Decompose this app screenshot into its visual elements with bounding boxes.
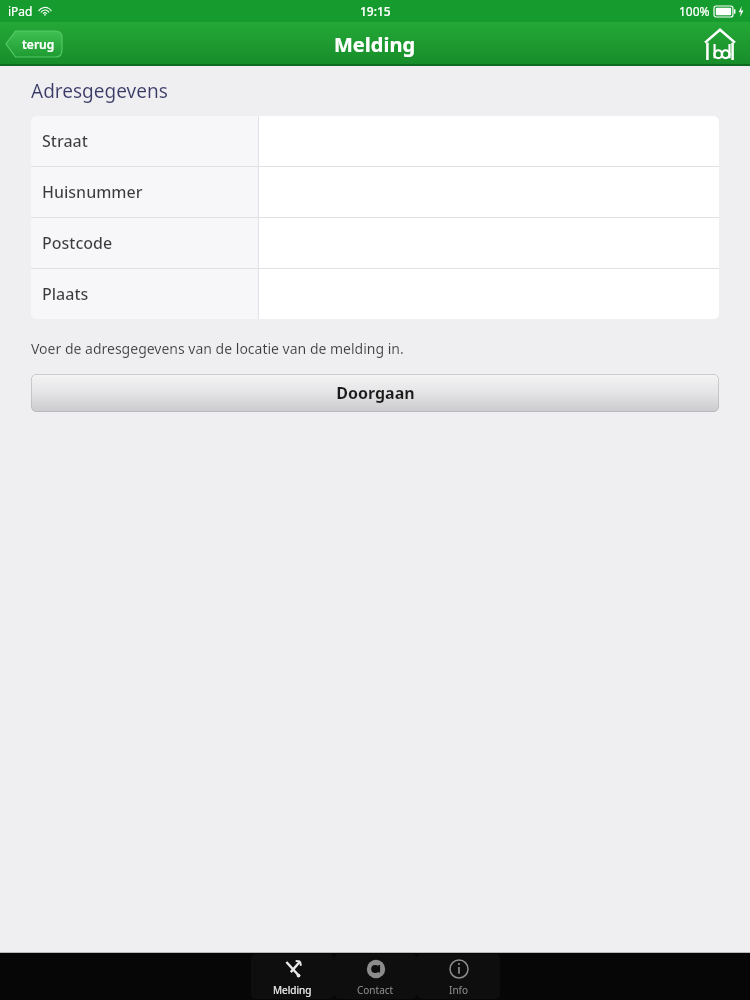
staticText: Postcode [42, 232, 113, 254]
staticText: Melding [334, 31, 416, 58]
staticText: Doorgaan [336, 382, 415, 404]
staticText: Melding [273, 983, 312, 997]
button[interactable]: Contact [334, 954, 417, 999]
staticText: Straat [42, 130, 88, 152]
staticText: terug [22, 36, 55, 52]
button[interactable]: Plaats [31, 269, 719, 319]
button[interactable]: Home [700, 24, 740, 64]
staticText: Adresgegevens [31, 78, 168, 104]
button[interactable]: Doorgaan [31, 374, 719, 412]
button[interactable]: Melding [251, 954, 334, 999]
button[interactable]: Info [417, 954, 500, 999]
staticText: 100% [679, 3, 710, 19]
staticText: Voer de adresgegevens van de locatie van… [31, 339, 404, 358]
button[interactable]: Postcode [31, 218, 719, 268]
staticText: iPad [8, 3, 33, 19]
button[interactable]: Huisnummer [31, 167, 719, 217]
staticText: Plaats [42, 283, 89, 305]
button[interactable]: terug [6, 31, 62, 57]
button[interactable]: Straat [31, 116, 719, 166]
staticText: Info [449, 983, 469, 997]
staticText: 19:15 [360, 3, 391, 19]
staticText: Huisnummer [42, 181, 143, 203]
staticText: Contact [357, 983, 394, 997]
